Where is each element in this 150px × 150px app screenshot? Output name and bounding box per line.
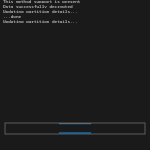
staticText: Updating partition details... bbox=[3, 18, 78, 23]
staticText: ...done bbox=[3, 13, 22, 18]
staticText: Data successfully decrypted bbox=[3, 3, 73, 8]
staticText: Updating partition details... bbox=[3, 8, 78, 13]
staticText: This method support is present bbox=[3, 0, 81, 3]
button[interactable]: Operation progress bbox=[5, 123, 145, 134]
